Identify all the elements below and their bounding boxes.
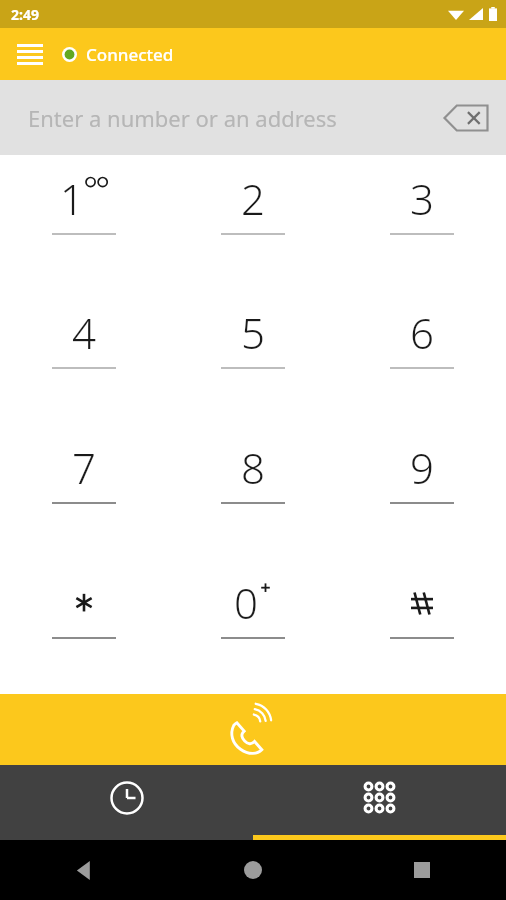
button[interactable]: Backspace [438,95,494,141]
button[interactable]: 4 [0,289,168,424]
other: Back [75,861,94,880]
staticText: Connected [86,43,174,66]
staticText: 5 [241,304,265,356]
button[interactable]: 3 [337,155,506,289]
staticText: 2 [241,170,265,222]
staticText: 7 [72,439,96,491]
button[interactable]: 1 [0,155,168,289]
staticText: 1 [60,170,84,222]
button[interactable]: 6 [337,289,506,424]
button[interactable]: 0 [168,559,337,694]
button[interactable]: Call [0,694,506,765]
button[interactable]: 5 [168,289,337,424]
button[interactable]: 8 [168,424,337,559]
button[interactable]: Open navigation menu [6,30,54,78]
staticText: 9 [410,439,434,491]
button[interactable] [0,559,168,694]
staticText: 6 [410,304,434,356]
staticText: 4 [72,304,96,356]
button[interactable] [337,559,506,694]
staticText: 3 [410,170,434,222]
button[interactable]: 9 [337,424,506,559]
staticText: 8 [241,439,265,491]
button[interactable]: 7 [0,424,168,559]
staticText: 2:49 [11,5,39,24]
button[interactable]: Dialpad [253,765,506,840]
other: Home [244,861,262,879]
button[interactable]: 2 [168,155,337,289]
button[interactable]: Call history [0,765,253,840]
staticText: 0 [234,574,258,626]
staticText: Enter a number or an address [28,103,337,133]
